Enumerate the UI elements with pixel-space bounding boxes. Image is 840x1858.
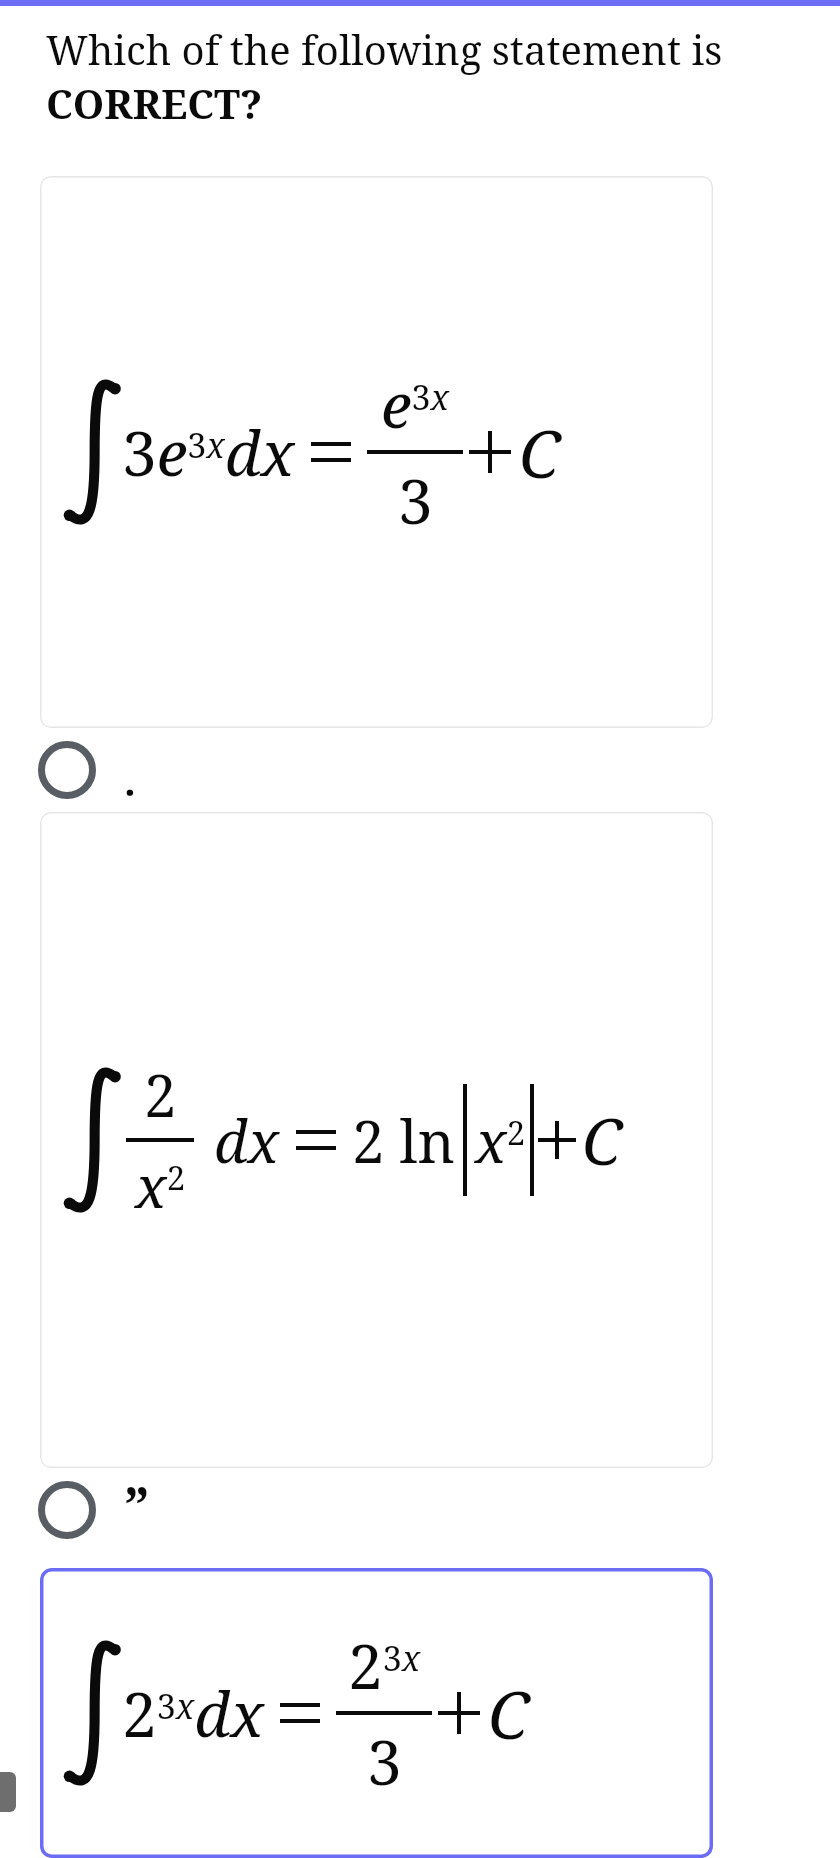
staticText: x2 [135, 1146, 186, 1225]
staticText: 2 [144, 1055, 177, 1134]
staticText: . [124, 753, 136, 807]
staticText: 23x [348, 1623, 421, 1707]
staticText: 3 [398, 458, 433, 542]
button[interactable]: Select answer option [0, 728, 840, 812]
staticText: C [582, 1097, 623, 1184]
staticText: 23xdx [122, 1671, 264, 1755]
staticText: ” [124, 1469, 150, 1540]
staticText: x2 [475, 1101, 526, 1180]
staticText: C [519, 407, 561, 497]
staticText: e3x [381, 362, 450, 446]
button[interactable]: 2 [40, 812, 713, 1468]
staticText: 2 ln [352, 1101, 455, 1180]
staticText: Which of the following statement is CORR… [46, 22, 840, 130]
staticText: C [488, 1668, 530, 1758]
button[interactable]: Select answer option [0, 1468, 840, 1552]
staticText: 3e3xdx [122, 410, 295, 494]
staticText: 3 [367, 1719, 402, 1803]
button[interactable]: 23xdx [40, 1568, 713, 1858]
button[interactable]: 3e3xdx [40, 176, 713, 728]
staticText: dx [214, 1101, 280, 1180]
